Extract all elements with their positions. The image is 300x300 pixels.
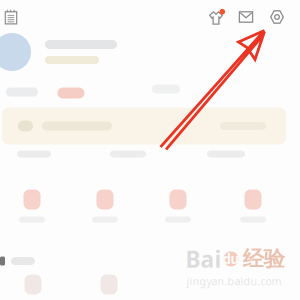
staticText: 经验 <box>242 246 284 272</box>
button[interactable]: Outfits <box>206 6 226 26</box>
staticText: du <box>222 250 239 268</box>
button[interactable] <box>0 80 46 104</box>
button[interactable] <box>145 184 211 228</box>
button[interactable]: Check in <box>0 5 23 29</box>
button[interactable] <box>220 184 286 228</box>
button[interactable] <box>93 144 163 164</box>
staticText: jingyan.baidu.com <box>186 274 281 288</box>
button[interactable] <box>191 144 261 164</box>
button[interactable] <box>72 184 138 228</box>
button[interactable] <box>76 269 142 300</box>
button[interactable]: Messages <box>235 6 257 28</box>
button[interactable]: Settings <box>266 6 288 28</box>
button[interactable] <box>47 81 95 105</box>
button[interactable] <box>0 184 65 228</box>
button[interactable] <box>0 144 69 164</box>
staticText: Bai <box>185 244 221 274</box>
button[interactable] <box>2 107 286 144</box>
button[interactable] <box>0 30 283 74</box>
button[interactable] <box>142 77 190 101</box>
button[interactable] <box>0 269 66 300</box>
